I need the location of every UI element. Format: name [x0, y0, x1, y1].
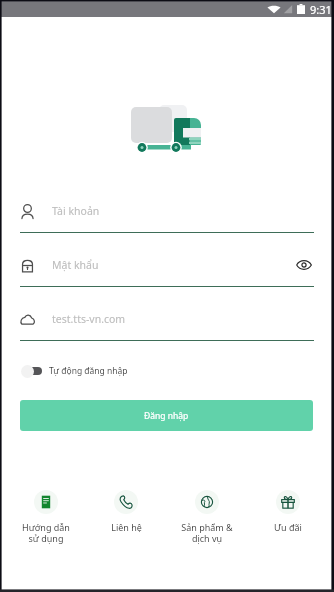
button[interactable]: Show password: [294, 255, 314, 275]
staticText: Ưu đãi: [274, 521, 302, 533]
staticText: Đăng nhập: [144, 410, 189, 422]
button[interactable]: Liên hệ: [86, 490, 166, 533]
staticText: Liên hệ: [111, 521, 142, 533]
staticText: Tự động đăng nhập: [49, 365, 128, 377]
staticText: Mật khẩu: [52, 258, 99, 272]
button[interactable]: Ưu đãi: [248, 490, 328, 533]
staticText: Tài khoản: [52, 204, 100, 218]
staticText: 9:31: [310, 2, 332, 17]
button[interactable]: Đăng nhập: [20, 400, 313, 431]
button[interactable]: Tự động đăng nhập: [21, 363, 128, 379]
staticText: Hướng dẫn sử dụng: [22, 521, 70, 545]
staticText: Sản phẩm & dịch vụ: [181, 521, 233, 545]
staticText: test.tts-vn.com: [52, 312, 126, 326]
button[interactable]: Sản phẩm & dịch vụ: [167, 490, 247, 545]
button[interactable]: Hướng dẫn sử dụng: [6, 490, 86, 545]
